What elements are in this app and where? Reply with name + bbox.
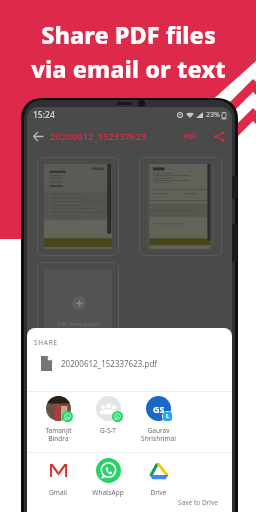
staticText: SHARE bbox=[34, 338, 58, 347]
button[interactable]: Add more pages bbox=[37, 262, 119, 361]
staticText: 15:24 bbox=[33, 109, 55, 121]
staticText: Tamanjit Bindra bbox=[45, 426, 72, 443]
staticText: Share PDF files bbox=[41, 19, 216, 51]
button[interactable]: WhatsApp bbox=[83, 458, 133, 497]
button[interactable]: Tamanjit Bindra bbox=[33, 396, 83, 443]
button[interactable] bbox=[139, 157, 222, 256]
staticText: 20200612_152337623 bbox=[50, 130, 147, 143]
staticText: Save to Drive bbox=[27, 498, 218, 507]
staticText: Drive bbox=[150, 488, 167, 497]
staticText: GS bbox=[153, 403, 165, 415]
staticText: G-S-T bbox=[100, 426, 116, 435]
button[interactable]: Gmail bbox=[33, 458, 83, 497]
button[interactable]: GS bbox=[133, 396, 183, 443]
button[interactable]: Drive bbox=[133, 458, 183, 497]
staticText: Gmail bbox=[49, 488, 67, 497]
button[interactable] bbox=[37, 157, 119, 256]
staticText: WhatsApp bbox=[92, 488, 124, 497]
button[interactable]: G-S-T bbox=[83, 396, 133, 435]
button[interactable]: PDF bbox=[182, 132, 199, 141]
staticText: 23% bbox=[206, 110, 220, 120]
button[interactable]: Share bbox=[214, 131, 225, 142]
staticText: Gaurav Shrishrimal bbox=[141, 426, 176, 443]
staticText: PDF bbox=[184, 132, 197, 141]
button[interactable]: Back bbox=[32, 130, 45, 143]
staticText: via email or text bbox=[31, 53, 226, 85]
staticText: L bbox=[166, 413, 169, 420]
staticText: 20200612_152337623.pdf bbox=[61, 358, 158, 369]
staticText: Add more pages bbox=[57, 320, 100, 327]
